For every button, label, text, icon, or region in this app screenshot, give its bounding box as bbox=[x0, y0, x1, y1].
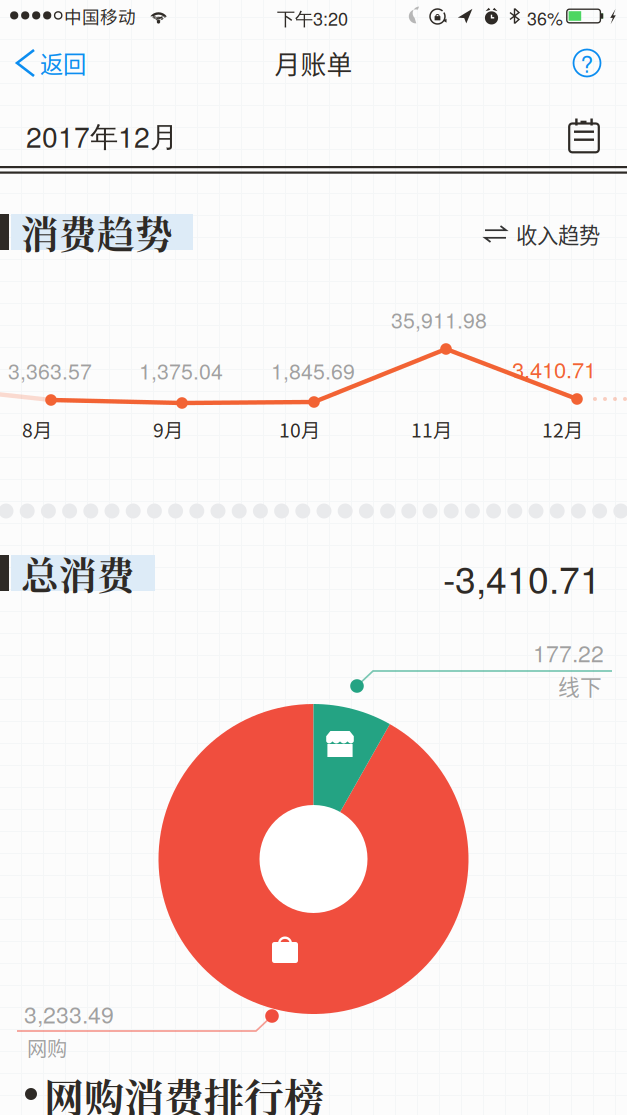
staticText: 3,410.71 bbox=[512, 353, 596, 384]
staticText: 消费趋势 bbox=[21, 205, 173, 259]
staticText: 12月 bbox=[542, 415, 583, 443]
staticText: -3,410.71 bbox=[443, 551, 601, 604]
staticText: 35,911.98 bbox=[391, 304, 487, 334]
staticText: 11月 bbox=[411, 415, 452, 443]
staticText: 线下 bbox=[558, 670, 602, 701]
staticText: 网购消费排行榜 bbox=[44, 1067, 324, 1115]
staticText: 1,845.69 bbox=[271, 355, 355, 385]
staticText: 3,233.49 bbox=[24, 997, 114, 1030]
staticText: 下午3:20 bbox=[277, 5, 348, 31]
staticText: 网购 bbox=[27, 1033, 67, 1062]
button[interactable]: 返回 bbox=[0, 40, 100, 86]
staticText: 1,375.04 bbox=[139, 355, 223, 385]
button[interactable]: 收入趋势 bbox=[471, 212, 616, 256]
staticText: 总消费 bbox=[21, 546, 135, 600]
button[interactable]: Help bbox=[564, 40, 610, 86]
staticText: 10月 bbox=[279, 415, 320, 443]
staticText: 9月 bbox=[153, 415, 183, 443]
staticText: ? bbox=[580, 47, 593, 79]
staticText: 中国移动 bbox=[64, 3, 136, 28]
staticText: 2017年12月 bbox=[26, 115, 178, 156]
staticText: 收入趋势 bbox=[516, 219, 600, 249]
staticText: 3,363.57 bbox=[8, 355, 92, 385]
button[interactable]: 2017年12月 bbox=[0, 103, 627, 168]
staticText: 返回 bbox=[40, 46, 86, 80]
staticText: 36% bbox=[527, 5, 563, 31]
staticText: 月账单 bbox=[274, 44, 352, 82]
staticText: 177.22 bbox=[533, 636, 604, 669]
staticText: 8月 bbox=[22, 415, 52, 443]
